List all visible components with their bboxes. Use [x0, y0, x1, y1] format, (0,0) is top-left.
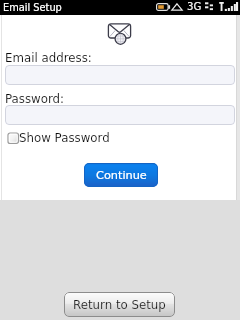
staticText: Password:: [5, 92, 65, 106]
button[interactable]: [5, 65, 235, 85]
staticText: Continue: [96, 169, 147, 182]
staticText: 3G: [187, 1, 202, 13]
button[interactable]: Show Password: [6, 130, 111, 145]
button[interactable]: Return to Setup: [64, 292, 175, 317]
staticText: Email Setup: [3, 2, 62, 13]
button[interactable]: Continue: [84, 163, 158, 187]
other: Email: [106, 22, 134, 46]
staticText: Show Password: [19, 131, 110, 145]
staticText: Return to Setup: [73, 298, 166, 312]
button[interactable]: [5, 105, 235, 125]
staticText: Email address:: [5, 51, 92, 65]
